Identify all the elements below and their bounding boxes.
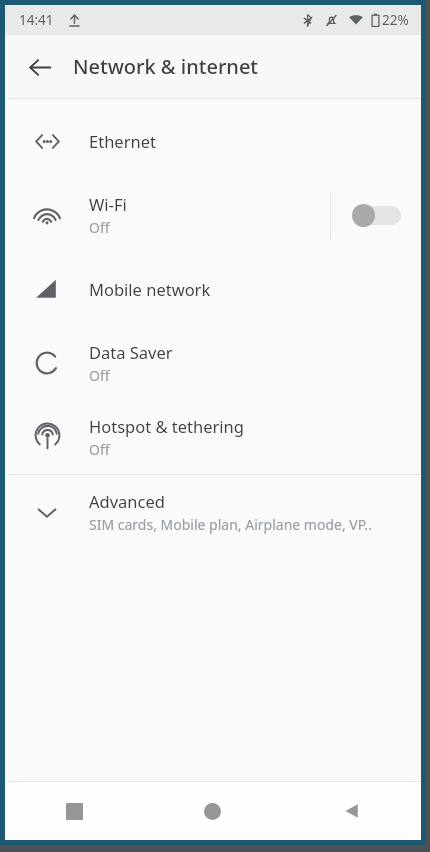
staticText: 14:41 [19, 11, 54, 29]
staticText: Wi-Fi [89, 193, 127, 215]
button[interactable]: Mobile network [5, 252, 421, 326]
staticText: Off [89, 218, 110, 237]
staticText: Mobile network [89, 278, 211, 300]
staticText: Advanced [89, 490, 165, 512]
staticText: Off [89, 366, 110, 385]
button[interactable]: Wi-Fi toggle [331, 178, 421, 252]
staticText: Ethernet [89, 130, 156, 152]
staticText: 22% [382, 11, 409, 29]
staticText: Hotspot & tethering [89, 415, 244, 437]
button[interactable]: Ethernet [5, 104, 421, 178]
staticText: SIM cards, Mobile plan, Airplane mode, V… [89, 515, 372, 534]
staticText: Data Saver [89, 341, 173, 363]
button[interactable]: Recent apps [5, 782, 143, 840]
button[interactable]: Hotspot & tethering [5, 400, 421, 474]
staticText: Network & internet [73, 53, 259, 80]
button[interactable]: Home [143, 782, 282, 840]
button[interactable]: Wi-Fi [5, 178, 421, 252]
button[interactable]: Data Saver [5, 326, 421, 400]
button[interactable]: Advanced [5, 475, 421, 549]
staticText: Off [89, 440, 110, 459]
button[interactable]: Back [282, 782, 421, 840]
button[interactable]: Back [17, 44, 63, 90]
